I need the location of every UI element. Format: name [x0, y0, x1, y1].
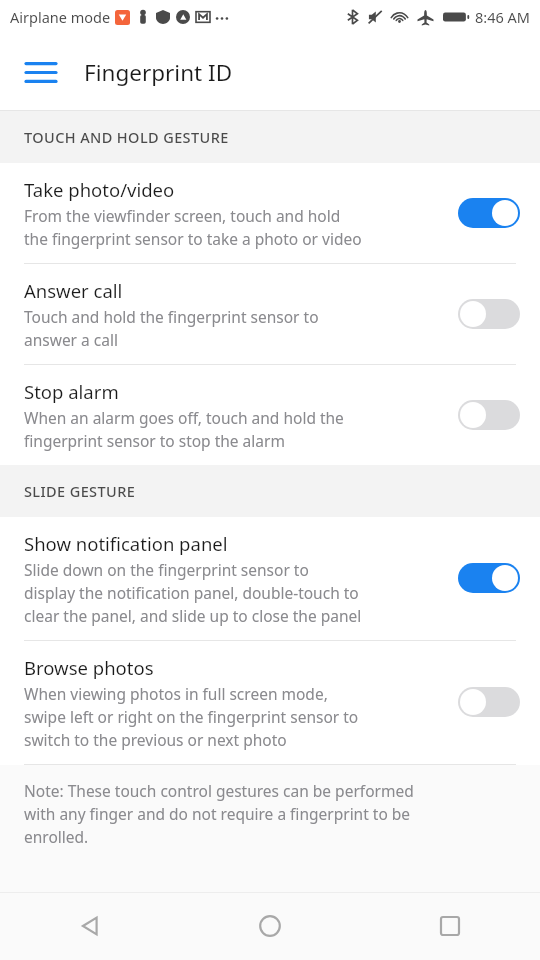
- button[interactable]: Toggle off: [458, 687, 520, 717]
- button[interactable]: Toggle on: [458, 563, 520, 593]
- staticText: Answer call: [24, 278, 123, 303]
- staticText: SLIDE GESTURE: [24, 481, 136, 501]
- staticText: When viewing photos in full screen mode,: [24, 683, 328, 704]
- staticText: the fingerprint sensor to take a photo o…: [24, 228, 362, 249]
- button[interactable]: Recent apps: [360, 892, 540, 960]
- staticText: Show notification panel: [24, 531, 228, 556]
- staticText: TOUCH AND HOLD GESTURE: [24, 127, 229, 147]
- staticText: Note: These touch control gestures can b…: [24, 780, 414, 801]
- button[interactable]: Browse photos: [0, 641, 540, 764]
- staticText: Stop alarm: [24, 379, 119, 404]
- staticText: Slide down on the fingerprint sensor to: [24, 559, 309, 580]
- button[interactable]: Show notification panel: [0, 517, 540, 640]
- button[interactable]: Toggle off: [458, 400, 520, 430]
- button[interactable]: Home: [180, 892, 360, 960]
- staticText: Fingerprint ID: [84, 57, 233, 88]
- staticText: enrolled.: [24, 826, 89, 847]
- staticText: switch to the previous or next photo: [24, 729, 287, 750]
- staticText: When an alarm goes off, touch and hold t…: [24, 407, 344, 428]
- button[interactable]: Open navigation menu: [14, 45, 68, 99]
- button[interactable]: Toggle on: [458, 198, 520, 228]
- staticText: swipe left or right on the fingerprint s…: [24, 706, 359, 727]
- staticText: 8:46 AM: [475, 7, 530, 27]
- staticText: Browse photos: [24, 655, 154, 680]
- button[interactable]: Back: [0, 892, 180, 960]
- staticText: with any finger and do not require a fin…: [24, 803, 411, 824]
- staticText: Airplane mode: [10, 7, 111, 27]
- staticText: From the viewfinder screen, touch and ho…: [24, 205, 341, 226]
- button[interactable]: Take photo/video: [0, 163, 540, 263]
- button[interactable]: Stop alarm: [0, 365, 540, 465]
- staticText: Take photo/video: [24, 177, 175, 202]
- staticText: Touch and hold the fingerprint sensor to: [24, 306, 319, 327]
- staticText: clear the panel, and slide up to close t…: [24, 605, 362, 626]
- staticText: display the notification panel, double-t…: [24, 582, 359, 603]
- staticText: answer a call: [24, 329, 118, 350]
- button[interactable]: Toggle off: [458, 299, 520, 329]
- button[interactable]: Answer call: [0, 264, 540, 364]
- staticText: fingerprint sensor to stop the alarm: [24, 430, 285, 451]
